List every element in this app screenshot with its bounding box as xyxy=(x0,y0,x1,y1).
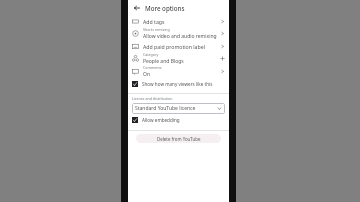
staticText: Comments xyxy=(143,65,162,70)
button[interactable]: Add tags xyxy=(128,15,229,27)
staticText: More options xyxy=(145,4,185,12)
button[interactable]: Category xyxy=(128,52,229,65)
staticText: People and Blogs xyxy=(143,58,184,65)
button[interactable]: Comments xyxy=(128,65,229,78)
staticText: Show how many viewers like this video xyxy=(142,81,225,87)
staticText: Allow video and audio remixing xyxy=(143,33,217,40)
staticText: On xyxy=(143,71,150,78)
button[interactable]: Standard YouTube licence xyxy=(132,103,225,114)
staticText: License and distribution xyxy=(132,96,173,101)
staticText: Category xyxy=(143,52,159,57)
staticText: Allow embedding xyxy=(142,117,180,123)
button[interactable]: Shorts remixing xyxy=(128,27,229,40)
button[interactable]: Show how many viewers like this video xyxy=(128,78,229,90)
staticText: Add tags xyxy=(143,18,220,25)
staticText: Add paid promotion label xyxy=(143,43,220,50)
button[interactable]: Add paid promotion label xyxy=(128,40,229,52)
button[interactable]: Allow embedding xyxy=(128,114,229,126)
button[interactable]: Delete from YouTube xyxy=(136,134,221,143)
staticText: Shorts remixing xyxy=(143,27,170,32)
staticText: Delete from YouTube xyxy=(157,136,201,142)
button[interactable]: Back xyxy=(131,2,142,13)
staticText: Standard YouTube licence xyxy=(135,105,217,112)
